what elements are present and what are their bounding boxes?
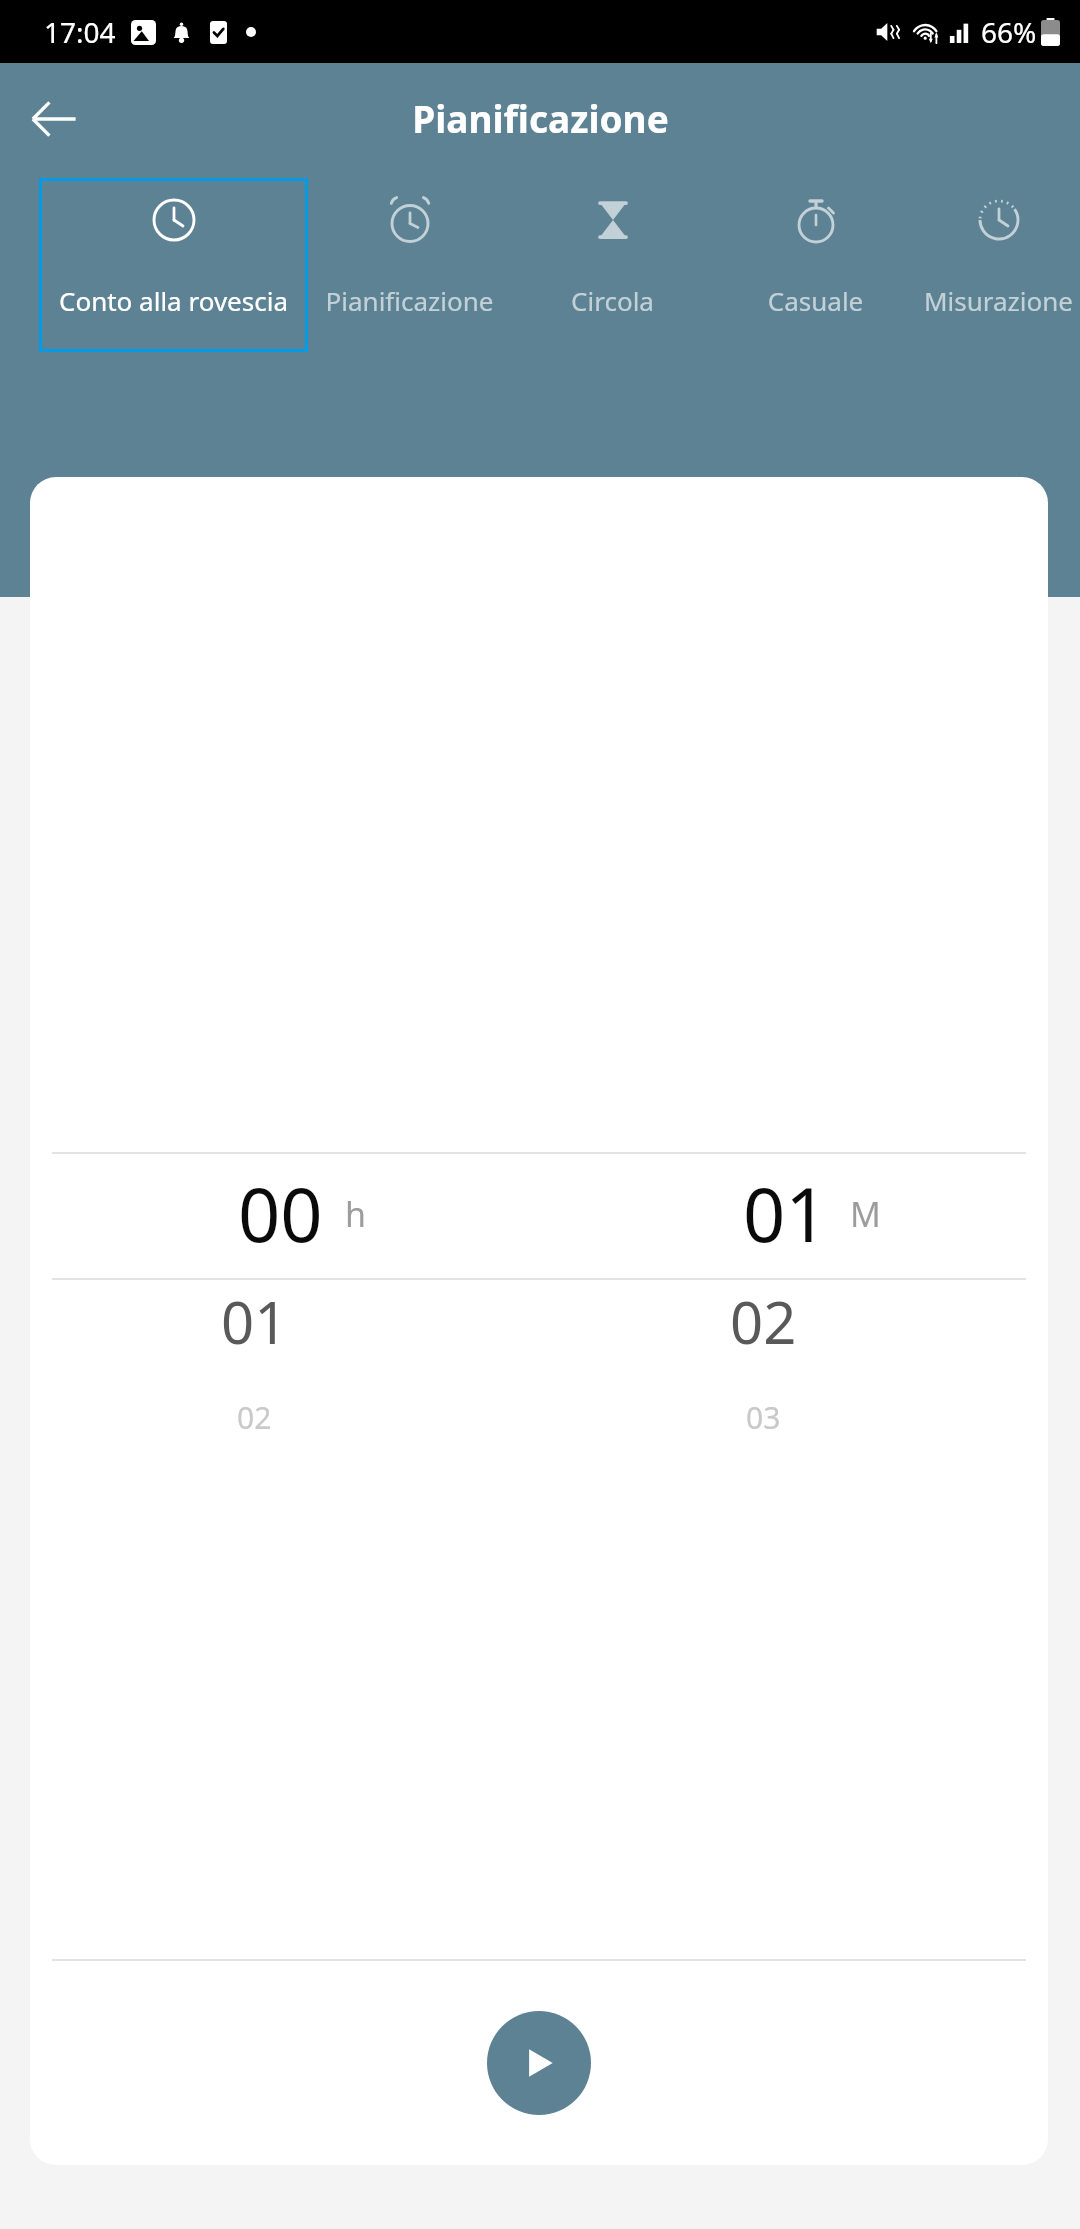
button[interactable]: 01	[539, 477, 1048, 2165]
button[interactable]: Back	[14, 79, 94, 159]
staticText: 00	[238, 1163, 323, 1264]
button[interactable]: Casuale	[714, 178, 917, 352]
button[interactable]: Misurazione	[917, 178, 1080, 352]
staticText: 66%	[981, 13, 1037, 51]
staticText: 02	[237, 1397, 272, 1438]
staticText: Circola	[511, 283, 714, 318]
button[interactable]: Circola	[511, 178, 714, 352]
button[interactable]: 00	[30, 477, 539, 2165]
button[interactable]: Start timer	[487, 2011, 591, 2115]
button[interactable]: Pianificazione	[308, 178, 511, 352]
staticText: 02	[730, 1282, 797, 1361]
staticText: 17:04	[44, 13, 116, 51]
staticText: 03	[746, 1397, 781, 1438]
button[interactable]: Conto alla rovescia	[39, 178, 308, 352]
staticText: M	[850, 1191, 881, 1237]
staticText: Pianificazione	[308, 283, 511, 318]
staticText: Misurazione	[917, 283, 1080, 318]
staticText: Casuale	[714, 283, 917, 318]
staticText: 01	[221, 1282, 288, 1361]
staticText: Pianificazione	[412, 93, 669, 143]
staticText: Conto alla rovescia	[39, 283, 308, 318]
staticText: h	[345, 1191, 367, 1237]
staticText: 01	[743, 1163, 828, 1264]
